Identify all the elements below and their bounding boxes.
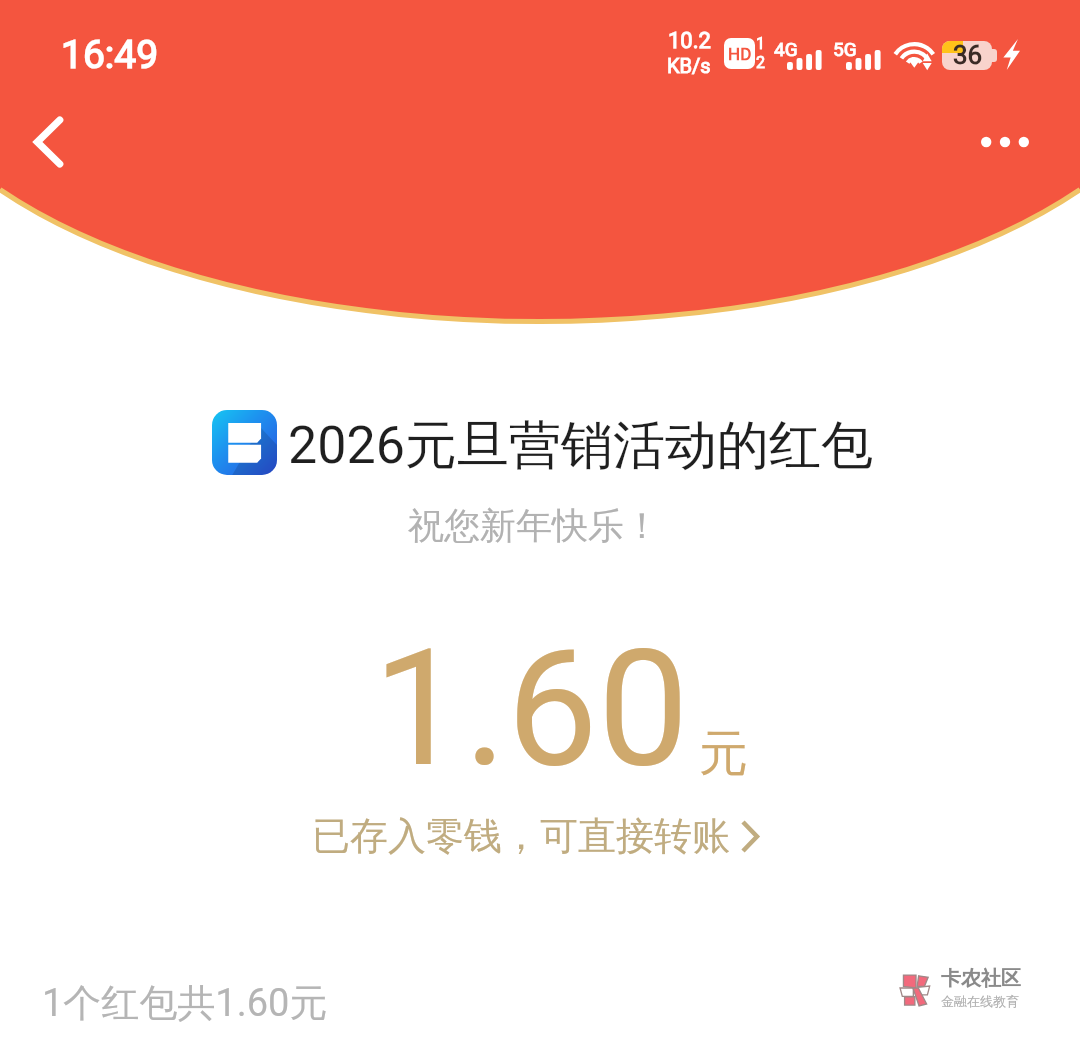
staticText: 卡农社区 bbox=[941, 966, 1021, 991]
staticText: 金融在线教育 bbox=[941, 993, 1019, 1009]
button[interactable]: Back bbox=[17, 107, 79, 177]
staticText: 元 bbox=[699, 723, 748, 785]
staticText: 祝您新年快乐！ bbox=[408, 503, 660, 548]
staticText: 已存入零钱，可直接转账 bbox=[312, 812, 730, 860]
staticText: 1个红包共1.60元 bbox=[42, 979, 328, 1027]
staticText: 36 bbox=[953, 40, 983, 69]
staticText: 2 bbox=[756, 53, 765, 72]
staticText: 1 bbox=[756, 34, 765, 53]
staticText: 16:49 bbox=[61, 32, 159, 78]
button[interactable]: More options bbox=[969, 112, 1041, 172]
button[interactable]: 已存入零钱，可直接转账 bbox=[304, 808, 767, 864]
staticText: KB/s bbox=[667, 54, 711, 77]
staticText: HD bbox=[728, 44, 752, 64]
staticText: 10.2 bbox=[668, 28, 711, 54]
staticText: 5G bbox=[833, 38, 857, 60]
staticText: 1.60 bbox=[373, 614, 689, 804]
staticText: 2026元旦营销活动的红包 bbox=[288, 413, 873, 479]
staticText: 4G bbox=[774, 38, 798, 60]
